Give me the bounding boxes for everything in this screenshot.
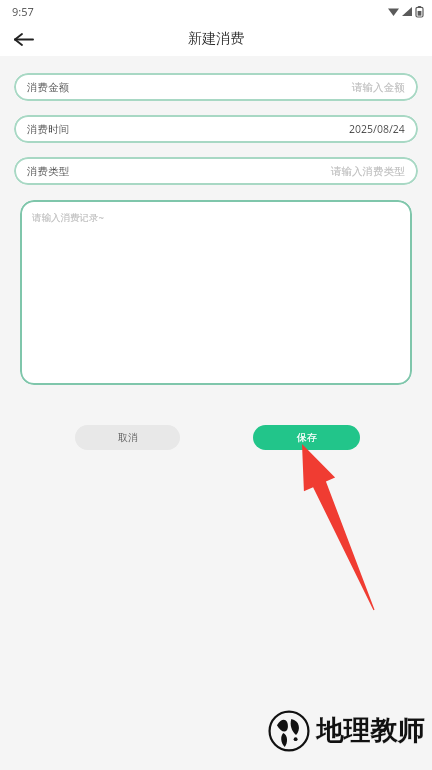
staticText: 地理教师 [316,714,424,748]
staticText: 9:57 [12,4,34,19]
staticText: 取消 [118,431,138,444]
button[interactable]: 保存 [253,425,360,450]
staticText: 消费类型 [27,165,69,178]
staticText: 消费金额 [27,81,69,94]
staticText: 保存 [297,431,317,444]
button[interactable]: 请输入消费记录~ [20,200,412,385]
button[interactable]: 消费类型 [14,157,418,185]
button[interactable]: 消费金额 [14,73,418,101]
button[interactable]: 消费时间 [14,115,418,143]
staticText: 2025/08/24 [349,122,405,136]
staticText: 请输入消费类型 [331,165,405,178]
button[interactable]: Back [6,22,40,56]
staticText: 新建消费 [188,30,244,48]
staticText: 请输入金额 [352,81,405,94]
staticText: 消费时间 [27,123,69,136]
staticText: 请输入消费记录~ [32,211,104,224]
button[interactable]: 取消 [75,425,180,450]
